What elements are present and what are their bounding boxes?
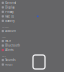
button[interactable]: Privacy (0, 10, 40, 14)
button[interactable]: Account (0, 29, 40, 33)
staticText: Apps (2, 37, 6, 38)
button[interactable]: Display (0, 5, 40, 10)
staticText: Display (5, 6, 14, 9)
staticText: Bluetooth (5, 44, 20, 47)
staticText: Services (2, 27, 9, 28)
staticText: Alerts (5, 48, 13, 52)
staticText: Battery (5, 19, 14, 23)
button[interactable]: Bluetooth (0, 43, 40, 48)
button[interactable]: Alerts (0, 48, 40, 52)
staticText: Privacy (5, 10, 13, 14)
button[interactable]: Wi-Fi (0, 39, 40, 43)
staticText: General (5, 1, 16, 5)
button[interactable]: Battery (0, 19, 40, 23)
button[interactable]: Face ID (0, 14, 40, 19)
button[interactable]: General (0, 1, 40, 5)
staticText: More (2, 56, 6, 57)
staticText: Wi-Fi (5, 39, 11, 43)
staticText: Face ID (5, 15, 14, 18)
button[interactable]: Focus (0, 62, 40, 67)
staticText: Focus (5, 63, 12, 66)
staticText: Account (5, 29, 16, 33)
button[interactable]: Sounds (0, 58, 40, 62)
staticText: Sounds (5, 58, 15, 62)
